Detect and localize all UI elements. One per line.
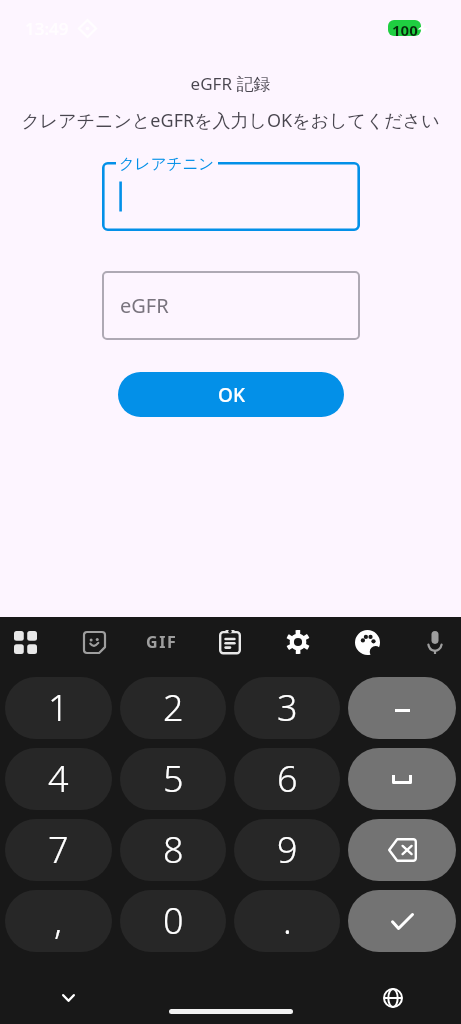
button[interactable]: Backspace — [348, 819, 456, 881]
button[interactable]: Minus — [348, 677, 456, 739]
button[interactable]: Voice input — [413, 620, 457, 664]
button[interactable]: OK — [118, 372, 344, 417]
staticText: 3 — [277, 683, 298, 732]
staticText: クレアチニン — [119, 154, 215, 174]
staticText: 7 — [48, 825, 69, 874]
staticText: . — [283, 896, 292, 945]
button[interactable]: クレアチニン — [102, 162, 360, 231]
button[interactable]: 8 — [120, 819, 226, 881]
staticText: , — [54, 896, 63, 945]
staticText: eGFR 記録 — [0, 72, 461, 95]
button[interactable]: 0 — [120, 890, 226, 952]
button[interactable]: Enter — [348, 890, 456, 952]
button[interactable]: 2 — [120, 677, 226, 739]
button[interactable]: 7 — [5, 819, 112, 881]
staticText: クレアチニンとeGFRを入力しOKをおしてください — [0, 108, 461, 133]
staticText: 9 — [277, 825, 298, 874]
button[interactable]: 5 — [120, 748, 226, 810]
staticText: 100 — [392, 20, 418, 36]
button[interactable]: , — [5, 890, 112, 952]
button[interactable]: 9 — [234, 819, 340, 881]
button[interactable]: Apps — [3, 620, 47, 664]
button[interactable]: eGFR — [102, 271, 360, 340]
staticText: eGFR — [120, 292, 169, 319]
button[interactable]: . — [234, 890, 340, 952]
staticText: 8 — [163, 825, 184, 874]
staticText: GIF — [146, 631, 178, 653]
staticText: 4 — [48, 754, 69, 803]
staticText: 5 — [163, 754, 184, 803]
staticText: 1 — [48, 683, 69, 732]
button[interactable]: Change language — [373, 978, 413, 1018]
button[interactable]: Hide keyboard — [48, 978, 88, 1018]
button[interactable]: Settings — [276, 620, 320, 664]
button[interactable]: Clipboard — [208, 620, 252, 664]
button[interactable]: 3 — [234, 677, 340, 739]
staticText: 0 — [163, 896, 184, 945]
button[interactable]: Stickers — [72, 620, 116, 664]
staticText: 2 — [163, 683, 184, 732]
staticText: 6 — [277, 754, 298, 803]
button[interactable]: Theme — [345, 620, 389, 664]
button[interactable]: Space — [348, 748, 456, 810]
button[interactable]: 1 — [5, 677, 112, 739]
button[interactable]: 4 — [5, 748, 112, 810]
staticText: OK — [218, 382, 245, 408]
button[interactable]: GIF — [140, 620, 184, 664]
button[interactable]: 6 — [234, 748, 340, 810]
